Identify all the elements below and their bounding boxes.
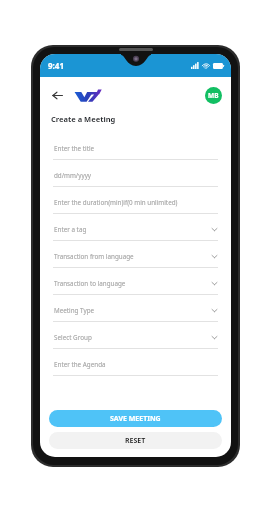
button[interactable]: MB bbox=[205, 87, 222, 104]
button[interactable]: Enter the Agenda bbox=[51, 353, 220, 380]
button[interactable]: Meeting Type bbox=[51, 299, 220, 326]
staticText: Transaction to language bbox=[54, 279, 126, 288]
button[interactable]: Enter the title bbox=[51, 137, 220, 164]
staticText: Enter the title bbox=[54, 144, 95, 153]
button[interactable]: Select Group bbox=[51, 326, 220, 353]
button[interactable]: dd/mm/yyyy bbox=[51, 164, 220, 191]
staticText: 9:41 bbox=[48, 60, 64, 71]
staticText: Select Group bbox=[54, 333, 92, 342]
staticText: Enter the duration(min)if(0 min unlimite… bbox=[54, 198, 178, 207]
staticText: Create a Meeting bbox=[51, 114, 116, 124]
button[interactable]: V7 logo bbox=[74, 88, 102, 103]
button[interactable]: SAVE MEETING bbox=[49, 410, 222, 427]
staticText: MB bbox=[208, 91, 219, 100]
button[interactable]: RESET bbox=[49, 432, 222, 449]
staticText: Enter the Agenda bbox=[54, 360, 106, 369]
staticText: SAVE MEETING bbox=[110, 414, 161, 424]
staticText: RESET bbox=[125, 436, 146, 446]
button[interactable]: Transaction to language bbox=[51, 272, 220, 299]
button[interactable]: Enter a tag bbox=[51, 218, 220, 245]
staticText: dd/mm/yyyy bbox=[54, 171, 92, 180]
staticText: Enter a tag bbox=[54, 225, 87, 234]
staticText: Transaction from language bbox=[54, 252, 134, 261]
button[interactable]: Transaction from language bbox=[51, 245, 220, 272]
staticText: Meeting Type bbox=[54, 306, 95, 315]
button[interactable]: Enter the duration(min)if(0 min unlimite… bbox=[51, 191, 220, 218]
button[interactable]: Back bbox=[49, 87, 65, 103]
